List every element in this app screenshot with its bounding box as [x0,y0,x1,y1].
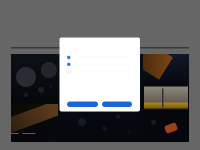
button[interactable] [59,61,140,68]
button[interactable] [59,54,140,61]
button[interactable] [102,101,132,107]
button[interactable] [67,101,98,107]
